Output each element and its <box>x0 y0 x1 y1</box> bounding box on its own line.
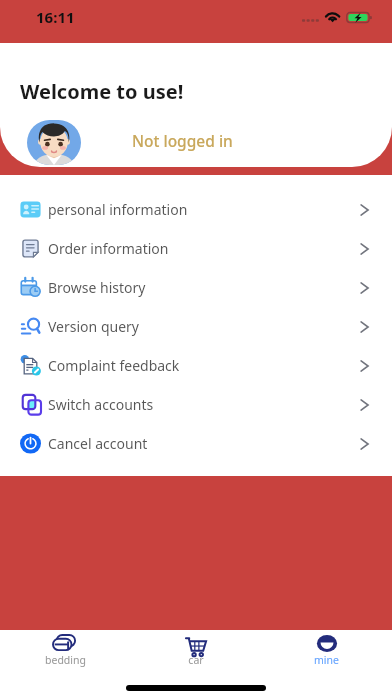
staticText: Version query <box>48 317 139 336</box>
staticText: Complaint feedback <box>48 356 180 375</box>
staticText: 16:11 <box>36 7 75 27</box>
button[interactable]: Version query <box>0 307 392 346</box>
button[interactable]: car <box>130 635 261 667</box>
staticText: Switch accounts <box>48 395 154 414</box>
button[interactable]: Cancel account <box>0 424 392 463</box>
button[interactable]: Complaint feedback <box>0 346 392 385</box>
button[interactable]: Browse history <box>0 268 392 307</box>
staticText: bedding <box>45 653 86 667</box>
button[interactable]: Order information <box>0 229 392 268</box>
button[interactable]: Switch accounts <box>0 385 392 424</box>
staticText: Order information <box>48 239 169 258</box>
button[interactable]: bedding <box>0 635 130 667</box>
staticText: Browse history <box>48 278 146 297</box>
button[interactable]: mine <box>261 635 392 667</box>
button[interactable]: personal information <box>0 190 392 229</box>
staticText: Not logged in <box>132 130 233 151</box>
staticText: personal information <box>48 200 188 219</box>
staticText: mine <box>314 653 339 667</box>
staticText: Cancel account <box>48 434 148 453</box>
staticText: Welcome to use! <box>20 78 184 105</box>
staticText: car <box>188 653 204 667</box>
